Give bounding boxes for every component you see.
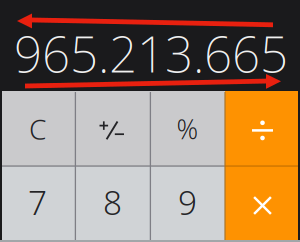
staticText: C <box>29 110 46 148</box>
button[interactable]: Multiply <box>225 166 300 242</box>
staticText: 9 <box>178 180 197 224</box>
staticText: % <box>176 111 198 147</box>
staticText: 965.213.665 <box>14 20 288 86</box>
button[interactable]: 8 <box>75 166 150 242</box>
button[interactable]: 7 <box>0 166 75 242</box>
staticText: 8 <box>103 180 122 224</box>
button[interactable]: Divide <box>225 91 300 167</box>
staticText: 7 <box>28 180 47 224</box>
button[interactable]: Plus Minus <box>75 91 150 167</box>
button[interactable]: C <box>0 91 75 167</box>
button[interactable]: 9 <box>150 166 225 242</box>
button[interactable]: % <box>150 91 225 167</box>
